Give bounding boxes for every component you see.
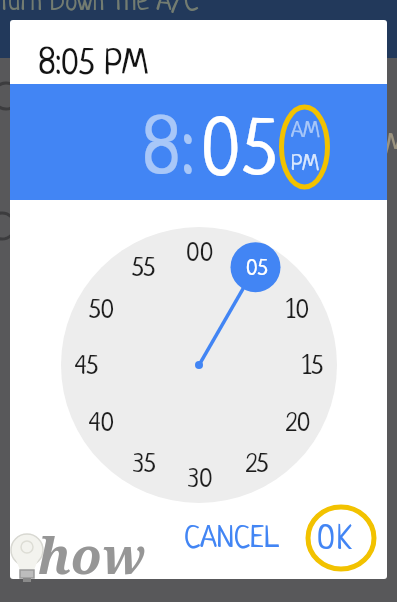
staticText: CANCEL (184, 523, 279, 556)
staticText: 30 (188, 466, 213, 494)
staticText: OK (317, 523, 355, 559)
staticText: 45 (75, 353, 99, 381)
staticText: M (385, 132, 397, 164)
button[interactable]: 8: (142, 113, 196, 195)
staticText: AM (291, 119, 320, 143)
staticText: 55 (132, 255, 156, 283)
staticText: 8:05 PM (38, 46, 148, 84)
staticText: 05 (246, 257, 268, 281)
button[interactable]: CANCEL (174, 517, 289, 562)
staticText: 15 (302, 353, 324, 381)
button[interactable]: 55 (122, 254, 166, 284)
staticText: 20 (286, 410, 311, 438)
button[interactable]: 50 (80, 296, 124, 326)
staticText: 25 (246, 451, 269, 479)
button[interactable]: 25 (235, 450, 279, 480)
staticText: 35 (133, 451, 156, 479)
staticText: 50 (89, 297, 115, 325)
button[interactable]: 20 (276, 409, 320, 439)
button[interactable]: 05 (201, 113, 279, 195)
staticText: PM (291, 152, 319, 176)
button[interactable]: 30 (178, 465, 222, 495)
staticText: how (38, 521, 146, 589)
button[interactable]: AM (283, 117, 327, 145)
button[interactable]: 35 (122, 450, 166, 480)
button[interactable]: 45 (65, 352, 109, 382)
button[interactable]: 15 (291, 352, 335, 382)
staticText: 10 (286, 297, 310, 325)
button[interactable]: 40 (80, 409, 124, 439)
button[interactable]: PM (283, 150, 327, 178)
button[interactable]: OK (307, 517, 365, 565)
staticText: 00 (186, 240, 214, 268)
staticText: Turn Down The A/C (0, 0, 199, 18)
button[interactable]: 10 (276, 296, 320, 326)
button[interactable]: 05 (235, 254, 279, 284)
staticText: 40 (89, 410, 115, 438)
button[interactable]: 00 (178, 239, 222, 269)
